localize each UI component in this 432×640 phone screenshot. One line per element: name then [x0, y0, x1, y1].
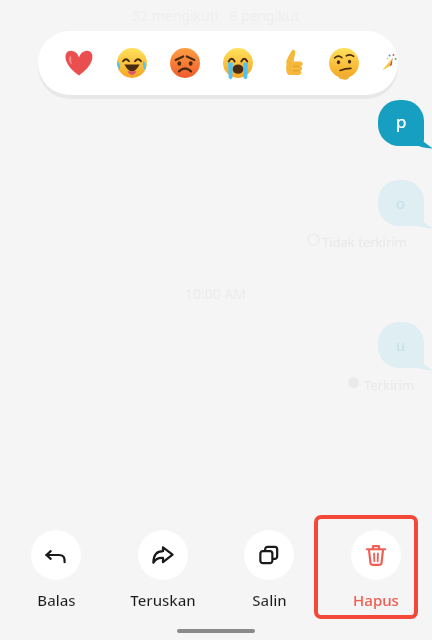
button[interactable]: Haha	[113, 44, 151, 82]
staticText: o	[396, 193, 406, 213]
button[interactable]: Salin	[219, 528, 319, 612]
button[interactable]: Thinking	[325, 44, 363, 82]
button[interactable]: Sad	[219, 44, 257, 82]
staticText: p	[396, 110, 407, 133]
staticText: Salin	[252, 590, 287, 610]
staticText: Tidak terkirim	[322, 233, 407, 251]
button[interactable]: Like	[272, 44, 310, 82]
button[interactable]: Hapus	[326, 528, 426, 612]
button[interactable]: Angry	[166, 44, 204, 82]
button[interactable]: Balas	[6, 528, 106, 612]
staticText: Terkirim	[364, 376, 415, 394]
button[interactable]: Teruskan	[113, 528, 213, 612]
staticText: Hapus	[353, 590, 399, 610]
button[interactable]: Love	[60, 44, 98, 82]
staticText: Teruskan	[130, 590, 196, 610]
button[interactable]: Celebrate	[378, 44, 398, 82]
staticText: u	[396, 335, 406, 355]
staticText: Balas	[37, 590, 76, 610]
